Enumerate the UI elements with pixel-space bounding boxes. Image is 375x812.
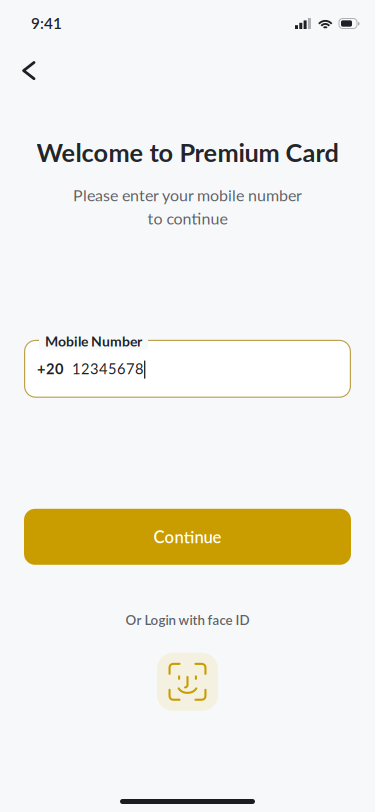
button[interactable]: Back bbox=[7, 49, 51, 93]
staticText: Or Login with face ID bbox=[125, 612, 249, 628]
staticText: Mobile Number bbox=[45, 333, 142, 350]
staticText: Welcome to Premium Card bbox=[36, 137, 338, 167]
staticText: 12345678 bbox=[64, 360, 144, 377]
staticText: +20 bbox=[37, 360, 64, 377]
staticText: Continue bbox=[153, 527, 221, 547]
staticText: Please enter your mobile number bbox=[73, 185, 302, 205]
button[interactable]: Login with Face ID bbox=[157, 653, 218, 711]
button[interactable]: Continue bbox=[24, 509, 351, 565]
staticText: 9:41 bbox=[31, 14, 62, 32]
staticText: to continue bbox=[147, 209, 227, 228]
